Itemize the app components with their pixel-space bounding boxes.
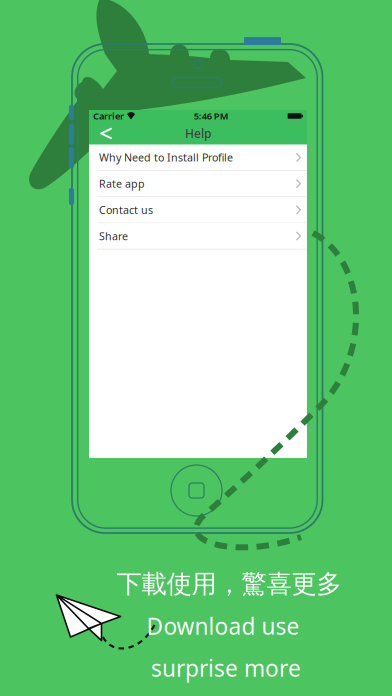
button[interactable]: Share: [89, 223, 307, 249]
staticText: surprise more: [151, 653, 301, 683]
staticText: Share: [99, 229, 128, 243]
button[interactable]: Contact us: [89, 197, 307, 223]
staticText: 5:46 PM: [194, 110, 229, 122]
staticText: Rate app: [99, 177, 145, 191]
staticText: Help: [185, 125, 211, 141]
button[interactable]: Why Need to Install Profile: [89, 145, 307, 171]
staticText: 下載使用，驚喜更多: [116, 568, 341, 599]
staticText: Carrier: [93, 110, 124, 122]
staticText: Contact us: [99, 203, 153, 217]
staticText: Why Need to Install Profile: [99, 150, 233, 165]
staticText: Download use: [146, 611, 299, 641]
button[interactable]: Rate app: [89, 171, 307, 197]
button[interactable]: Back: [89, 123, 118, 144]
